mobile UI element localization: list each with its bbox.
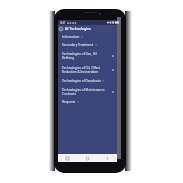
staticText: Technologies of Desalinate (62, 79, 101, 83)
button[interactable]: Secondary Treatment (58, 41, 117, 48)
staticText: 9:41 (60, 21, 66, 25)
button[interactable]: Back (97, 154, 117, 162)
staticText: Information (62, 35, 80, 39)
staticText: Contracts (62, 92, 76, 96)
button[interactable]: Recents (58, 154, 77, 162)
staticText: Requests (62, 100, 76, 104)
other: Open (112, 91, 114, 93)
staticText: Reduction & Incineration (62, 70, 99, 74)
button[interactable]: Technologies of Gas, Oil (58, 48, 117, 63)
button[interactable]: App logo (58, 25, 117, 33)
other: Open (112, 55, 114, 57)
other: Open (112, 69, 114, 71)
staticText: Technologies of Oil, Offset (62, 66, 101, 70)
staticText: Secondary Treatment (62, 43, 94, 47)
staticText: Technologies of Gas, Oil (62, 52, 97, 56)
button[interactable]: Technologies of Maintenance (58, 85, 117, 98)
staticText: Technologies of Maintenance (62, 88, 105, 92)
staticText: Refining (62, 56, 75, 60)
button[interactable]: Requests (58, 98, 117, 106)
button[interactable]: Information (58, 33, 117, 41)
button[interactable]: Technologies of Desalinate (58, 76, 117, 85)
button[interactable]: Home (77, 154, 97, 162)
other: App logo (59, 27, 63, 31)
button[interactable]: Technologies of Oil, Offset (58, 63, 117, 76)
staticText: AI Technologies (65, 27, 91, 31)
